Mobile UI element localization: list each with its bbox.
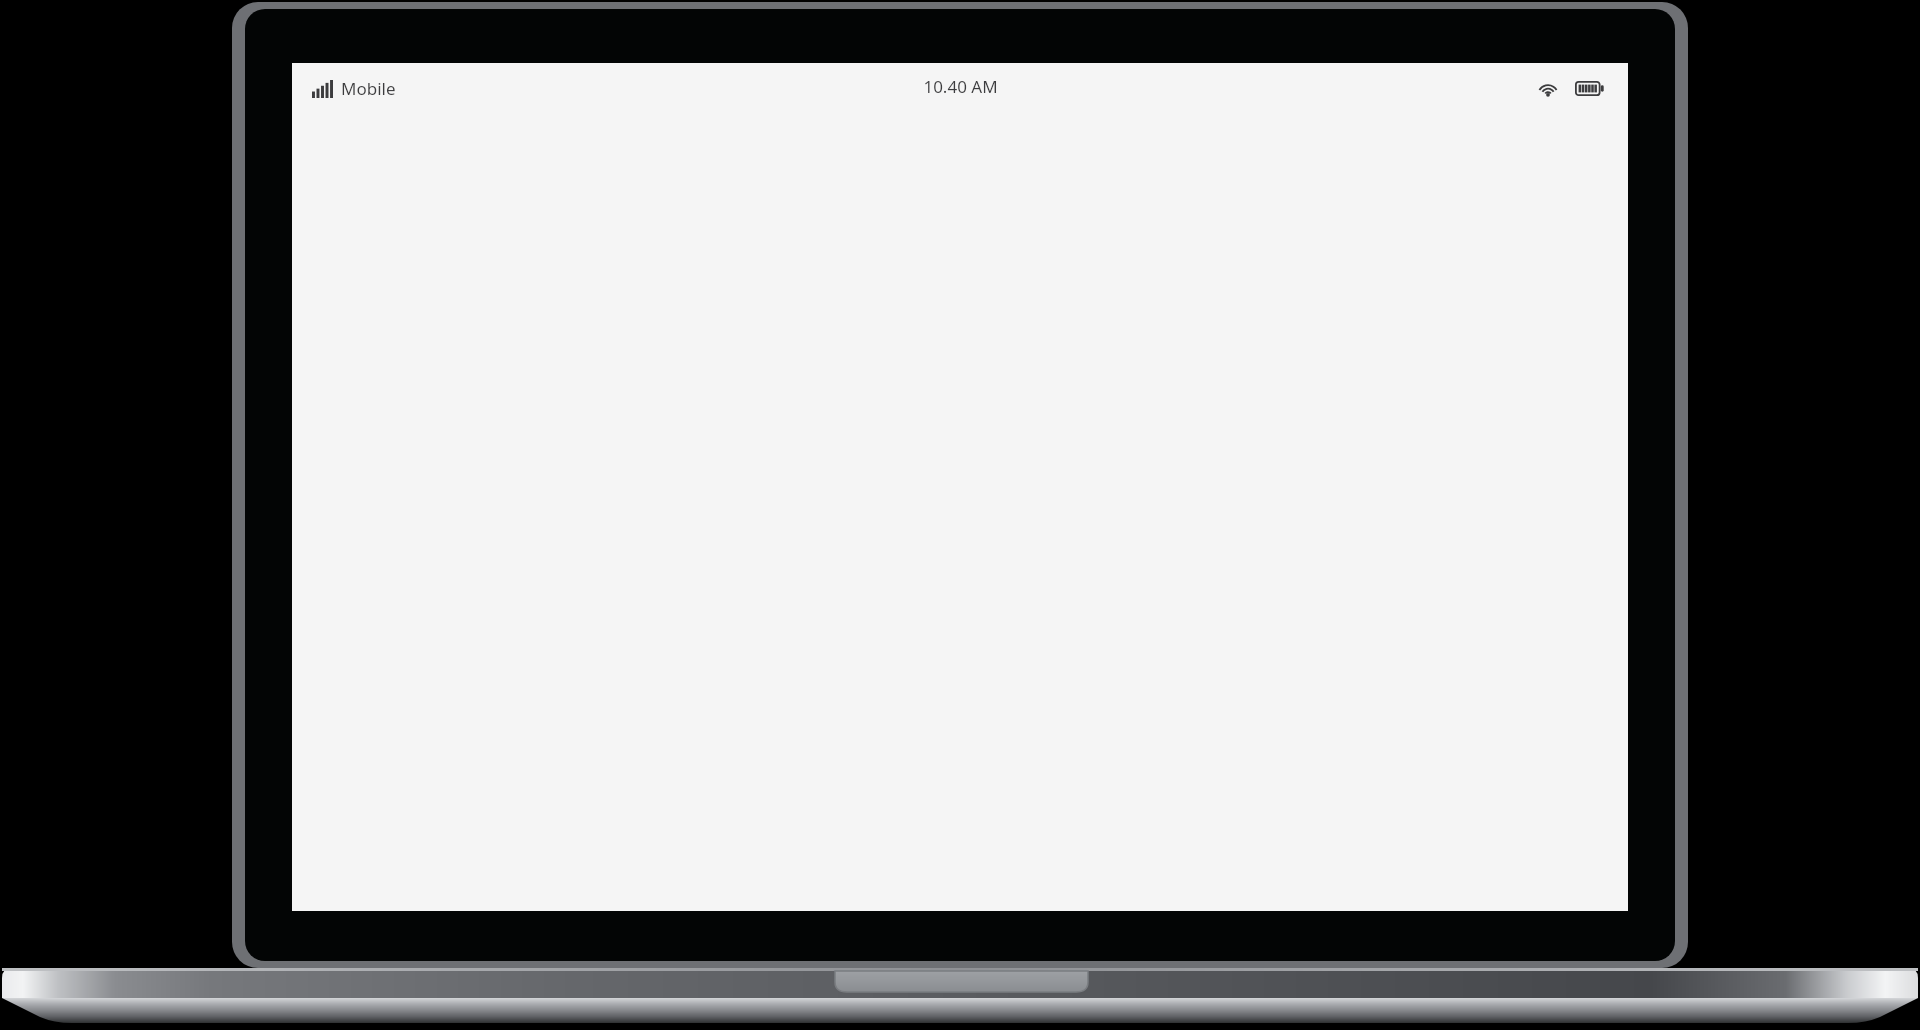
button[interactable]: Battery <box>1573 79 1606 98</box>
button[interactable]: Mobile signal <box>310 73 398 104</box>
staticText: 10.40 AM <box>923 75 998 98</box>
staticText: Mobile <box>341 77 396 100</box>
button[interactable]: Wi-Fi <box>1535 78 1561 99</box>
